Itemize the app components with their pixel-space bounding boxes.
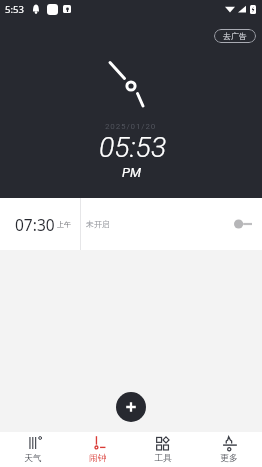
- button[interactable]: 更多: [196, 435, 262, 464]
- button[interactable]: 07:30: [0, 198, 262, 250]
- button[interactable]: 闹钟: [65, 435, 130, 464]
- button[interactable]: 天气: [0, 435, 65, 464]
- staticText: 2025/01/20: [105, 122, 157, 131]
- staticText: 更多: [220, 453, 238, 464]
- staticText: 上午: [57, 220, 71, 229]
- button[interactable]: Alarm toggle: [234, 217, 252, 231]
- staticText: 07:30: [15, 214, 55, 235]
- staticText: 天气: [24, 453, 42, 464]
- staticText: 工具: [154, 453, 172, 464]
- button[interactable]: 工具: [130, 435, 196, 464]
- staticText: PM: [122, 165, 141, 180]
- button[interactable]: 去广告: [214, 29, 256, 43]
- staticText: 5:53: [5, 3, 24, 16]
- staticText: 去广告: [223, 31, 247, 41]
- staticText: 闹钟: [89, 453, 107, 464]
- staticText: 05:53: [99, 131, 167, 164]
- button[interactable]: Add alarm: [116, 392, 146, 422]
- staticText: 未开启: [86, 219, 110, 229]
